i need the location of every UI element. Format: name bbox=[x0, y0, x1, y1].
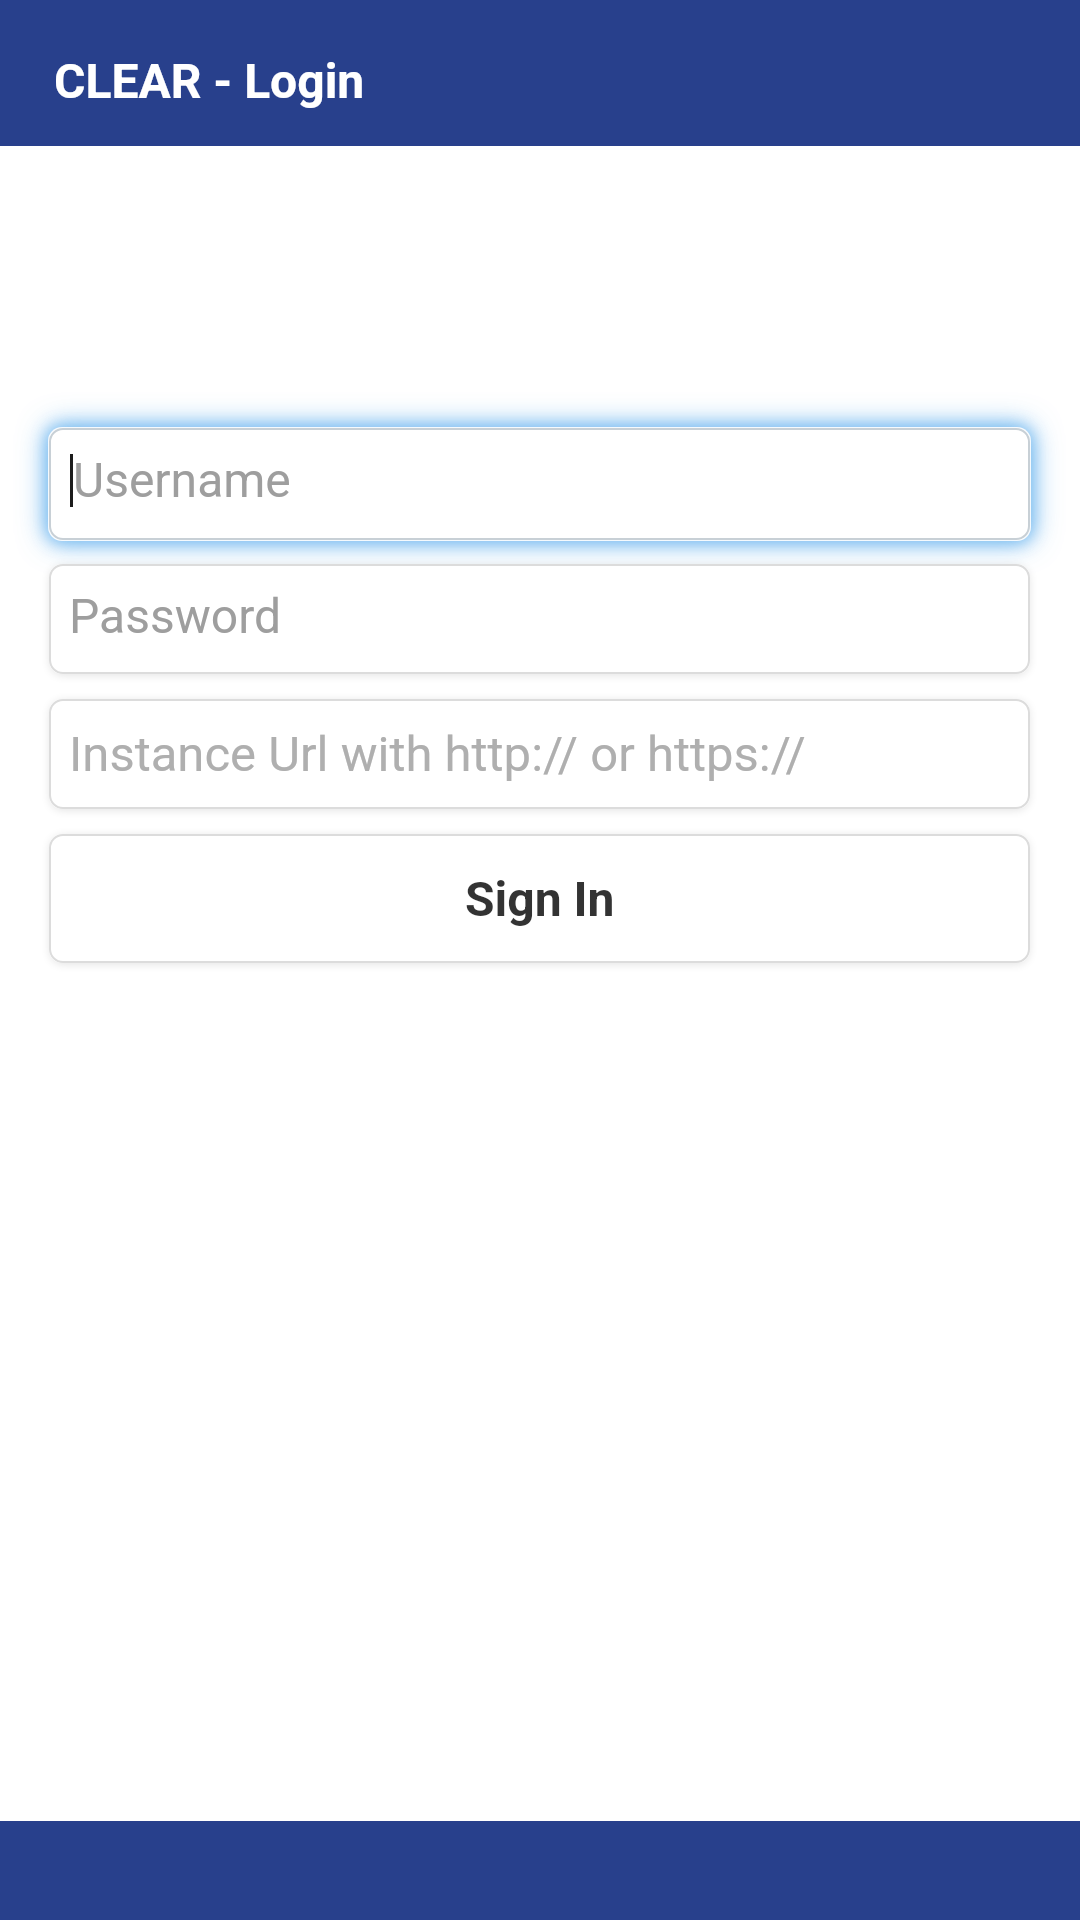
staticText: Instance Url with http:// or https:// bbox=[69, 726, 806, 783]
staticText: Password bbox=[69, 588, 282, 644]
button[interactable]: Username input field bbox=[49, 428, 1030, 540]
button[interactable]: Password input field bbox=[49, 564, 1030, 674]
staticText: Username bbox=[73, 452, 291, 508]
staticText: CLEAR - Login bbox=[54, 53, 365, 109]
button[interactable]: Instance Url input field bbox=[49, 699, 1030, 809]
staticText: Sign In bbox=[465, 871, 615, 927]
button[interactable]: Sign In bbox=[49, 834, 1030, 963]
